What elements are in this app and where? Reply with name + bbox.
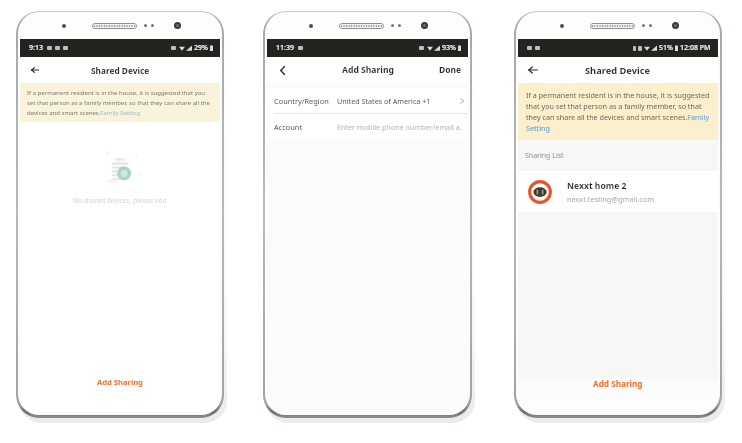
staticText: Add Sharing	[342, 64, 394, 76]
button[interactable]: Back	[274, 62, 290, 78]
staticText: Sharing List	[525, 151, 564, 161]
staticText: 9:13	[29, 43, 43, 53]
staticText: Shared Device	[91, 65, 150, 76]
staticText: Enter mobile phone number/email a.	[337, 122, 462, 132]
button[interactable]: Back	[525, 62, 541, 78]
button[interactable]: Done	[433, 60, 468, 80]
button[interactable]: Nexxt home 2	[518, 171, 718, 212]
staticText: Done	[439, 64, 462, 76]
staticText: 12:08 PM	[680, 43, 711, 53]
button[interactable]: Add Sharing	[20, 377, 220, 413]
staticText: If a permanent resident is in the house,…	[27, 89, 213, 116]
staticText: nexxt.testing@gmail.com	[567, 194, 654, 204]
staticText: If a permanent resident is in the house,…	[526, 90, 710, 133]
button[interactable]: Country/Region	[267, 88, 468, 113]
staticText: 29%	[194, 43, 208, 53]
button[interactable]: Add Sharing	[518, 373, 718, 413]
staticText: United States of America +1	[337, 96, 431, 106]
staticText: No shared devices, please add	[73, 196, 167, 205]
button[interactable]: Account	[267, 114, 468, 139]
staticText: 93%	[442, 43, 456, 53]
button[interactable]: Back	[27, 62, 43, 78]
staticText: Shared Device	[585, 64, 651, 77]
staticText: 51%	[659, 43, 673, 53]
staticText: Add Sharing	[593, 378, 643, 389]
staticText: 11:39	[276, 43, 294, 53]
staticText: Account	[274, 122, 303, 132]
staticText: Nexxt home 2	[567, 180, 627, 192]
staticText: Country/Region	[274, 96, 329, 106]
staticText: Add Sharing	[97, 377, 143, 387]
